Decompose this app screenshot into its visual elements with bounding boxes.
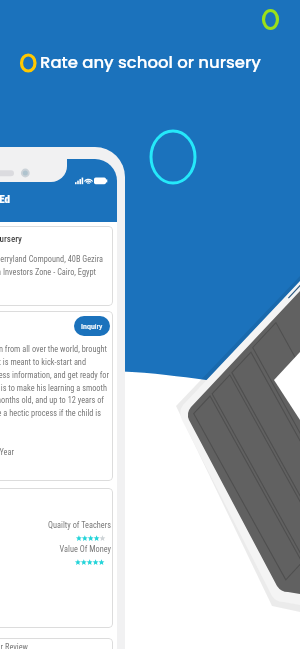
- staticText: Villa 4, Gezira - Merryland Compound, 40…: [0, 254, 103, 264]
- staticText: school. Our main objective at Hayah is t…: [0, 383, 107, 393]
- staticText: up in a multicultural environment. It is…: [0, 357, 86, 367]
- staticText: Hayah nursery accepts children from all …: [0, 344, 107, 354]
- staticText: Quailty of Teachers: [0, 520, 111, 530]
- button[interactable]: [0, 638, 113, 649]
- staticText: prepare your child to face the world, ac…: [0, 370, 109, 380]
- staticText: Your Review: [0, 642, 28, 649]
- staticText: age. Choosing a nursery can be quite a h…: [0, 408, 101, 418]
- button[interactable]: Inquiry: [74, 316, 110, 336]
- staticText: Nurseries & Ed: [0, 193, 10, 206]
- other: Add rating form: [0, 0, 300, 649]
- staticText: Hayah Nursery, 40B Gezira Investors Zone…: [0, 267, 96, 277]
- button[interactable]: [0, 488, 113, 628]
- staticText: Value Of Money: [0, 544, 111, 554]
- button[interactable]: [0, 226, 113, 306]
- button[interactable]: [0, 311, 113, 481]
- staticText: Hayah International Academy Nursery: [0, 234, 22, 245]
- staticText: process. We accept children from 6 month…: [0, 395, 104, 405]
- staticText: Price Per Year: [0, 447, 14, 457]
- staticText: Inquiry: [81, 322, 103, 331]
- other: Status: [75, 176, 103, 186]
- staticText: Rate any school or nursery: [40, 51, 261, 74]
